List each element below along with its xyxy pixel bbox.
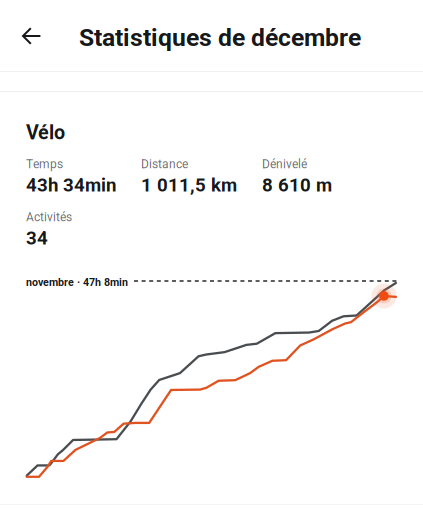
staticText: 43h 34min: [26, 174, 116, 196]
staticText: Vélo: [26, 121, 65, 144]
staticText: 8 610 m: [262, 174, 332, 196]
staticText: Distance: [141, 157, 188, 171]
staticText: Activités: [26, 210, 72, 224]
staticText: Temps: [26, 157, 63, 171]
staticText: 1 011,5 km: [141, 174, 237, 196]
staticText: novembre · 47h 8min: [26, 276, 128, 288]
staticText: 34: [26, 227, 48, 249]
staticText: Statistiques de décembre: [79, 23, 361, 52]
staticText: Dénivelé: [262, 157, 307, 171]
button[interactable]: Back: [9, 14, 53, 58]
